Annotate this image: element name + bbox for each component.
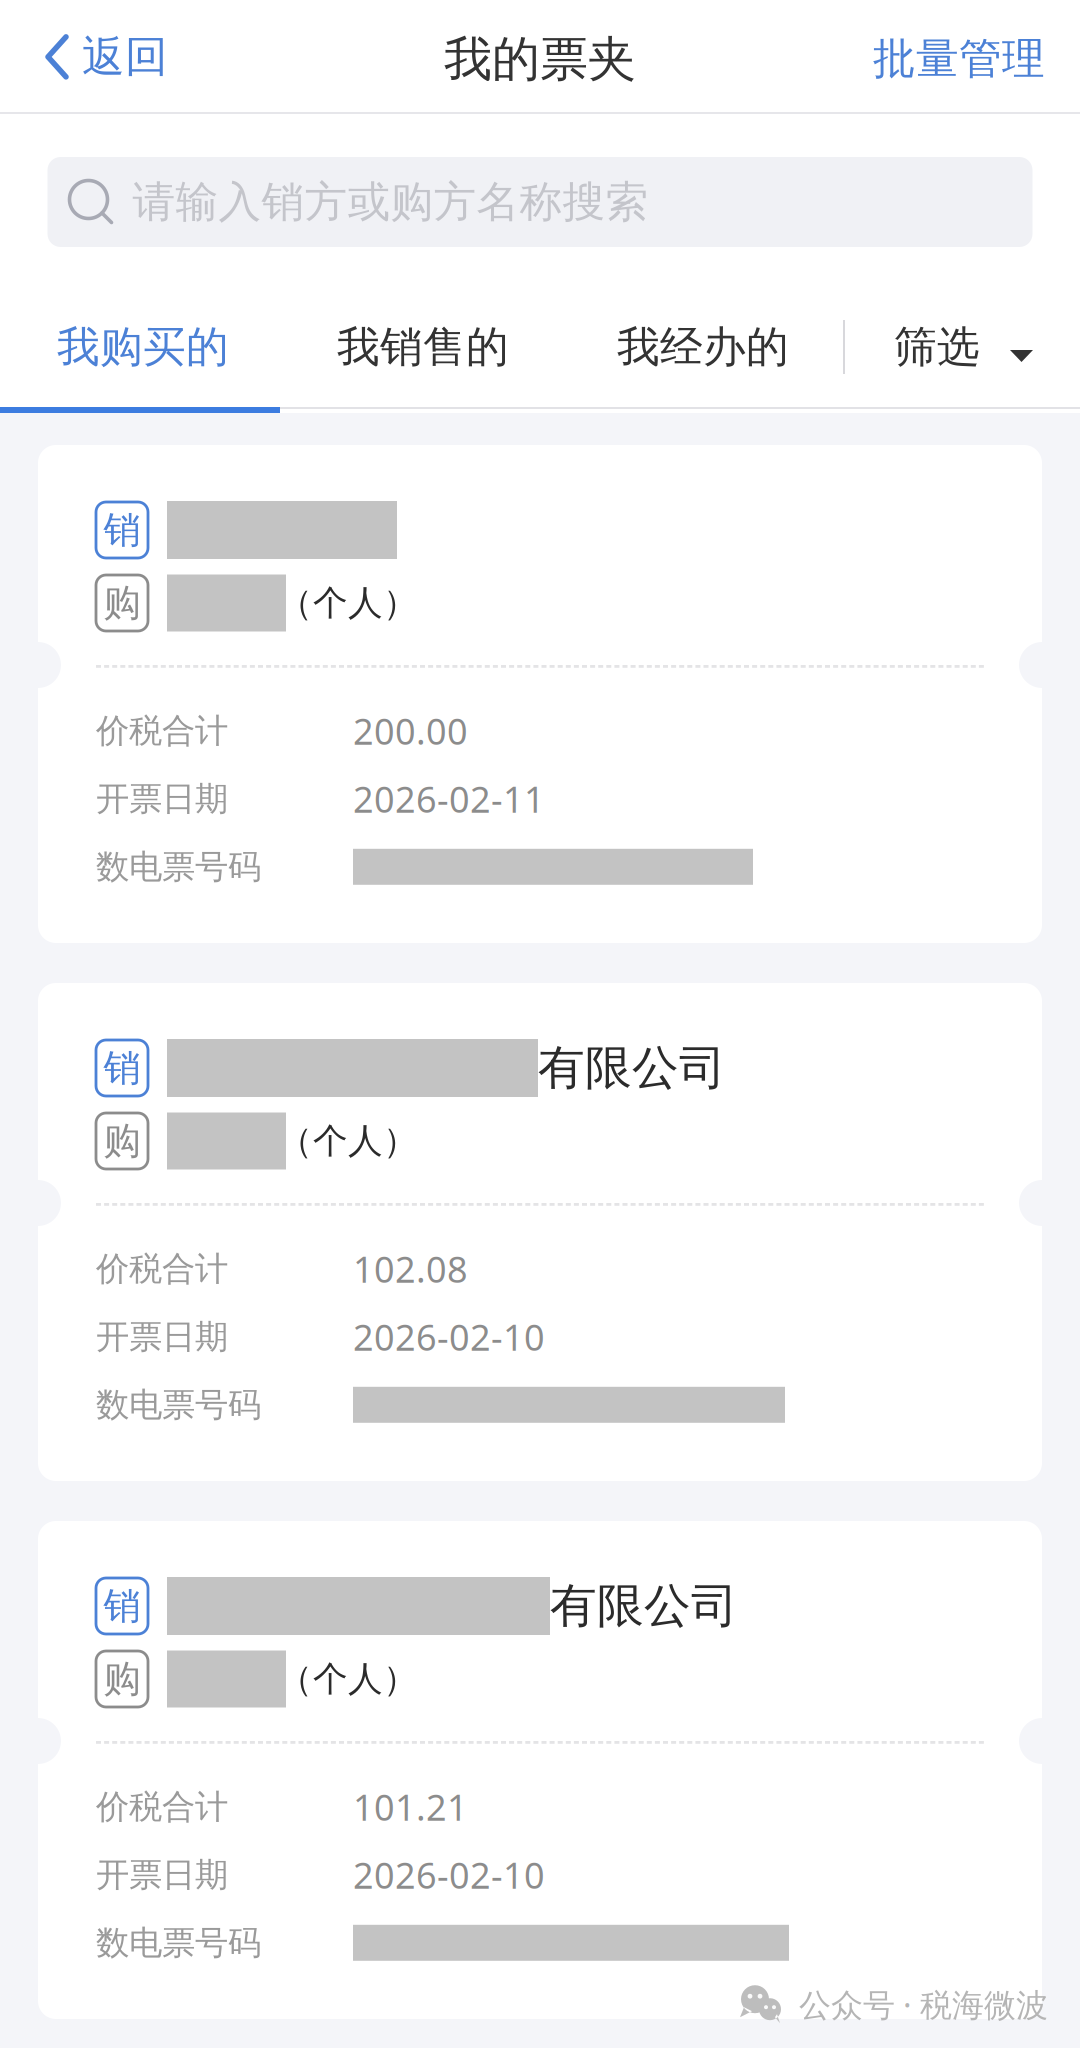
staticText: 有限公司 [550,1577,738,1635]
staticText: 开票日期 [96,1316,228,1358]
staticText: 购 [103,1117,140,1164]
staticText: 筛选 [894,320,980,374]
button[interactable]: 返回 [0,0,188,112]
staticText: 101.21 [353,1782,468,1831]
staticText: 数电票号码 [96,846,261,888]
button[interactable]: 批量管理 [873,0,1080,112]
staticText: 数电票号码 [96,1384,261,1426]
staticText: 开票日期 [96,1854,228,1896]
staticText: 销 [103,1044,140,1091]
staticText: 有限公司 [538,1039,726,1097]
button[interactable]: 销 [38,983,1042,1481]
staticText: 开票日期 [96,778,228,820]
staticText: 销 [103,506,140,553]
staticText: （个人） [278,1657,418,1701]
staticText: （个人） [278,581,418,625]
button[interactable]: 我经办的 [563,247,843,407]
staticText: 数电票号码 [96,1922,261,1964]
button[interactable]: 销 [38,1521,1042,2019]
staticText: 返回 [82,30,168,84]
staticText: 价税合计 [96,710,228,752]
button[interactable]: 我销售的 [283,247,563,407]
button[interactable]: 我购买的 [3,247,283,407]
button[interactable]: 筛选 [845,247,1063,407]
staticText: 2026-02-11 [353,774,545,823]
staticText: （个人） [278,1119,418,1163]
staticText: 我的票夹 [444,29,636,89]
staticText: 我经办的 [617,320,789,374]
staticText: 2026-02-10 [353,1312,545,1361]
staticText: 我购买的 [57,320,229,374]
staticText: 购 [103,1655,140,1702]
staticText: 公众号 · 税海微波 [799,1982,1048,2026]
staticText: 价税合计 [96,1248,228,1290]
staticText: 请输入销方或购方名称搜索 [132,175,648,229]
staticText: 销 [103,1582,140,1629]
button[interactable]: 请输入销方或购方名称搜索 [47,157,1032,247]
staticText: 200.00 [353,706,468,755]
staticText: 2026-02-10 [353,1850,545,1899]
staticText: 批量管理 [873,32,1045,86]
button[interactable]: 销 [38,445,1042,943]
staticText: 102.08 [353,1244,468,1293]
staticText: 我销售的 [337,320,509,374]
staticText: 购 [103,579,140,626]
staticText: 价税合计 [96,1786,228,1828]
